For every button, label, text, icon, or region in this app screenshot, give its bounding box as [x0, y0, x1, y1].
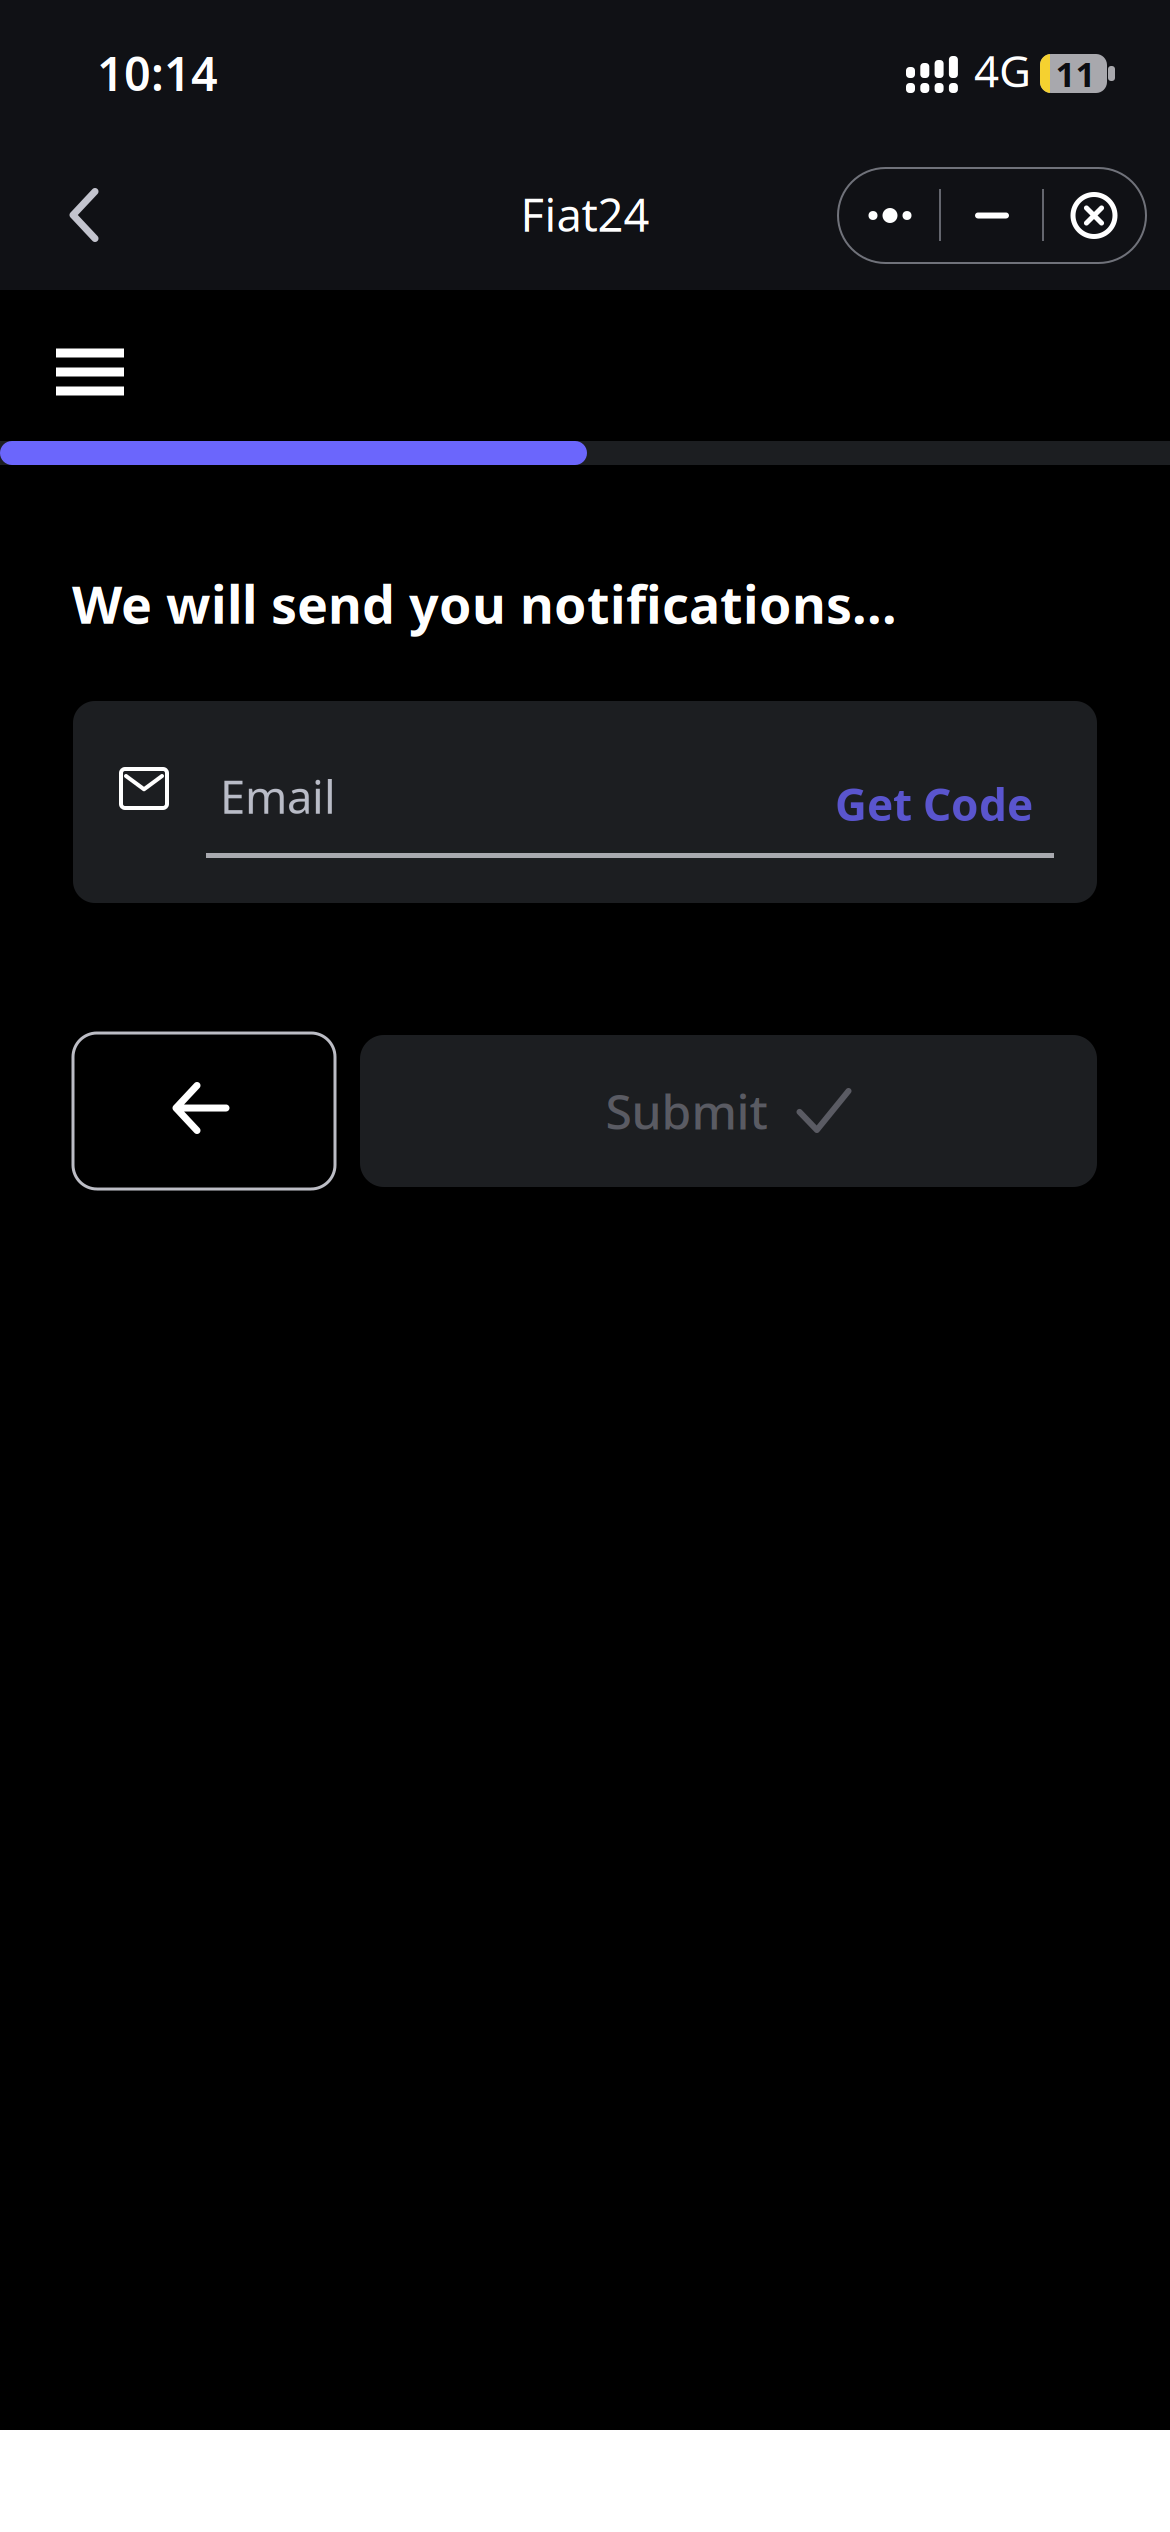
staticText: Submit: [605, 1079, 767, 1143]
staticText: 11: [1055, 50, 1095, 96]
button[interactable]: More: [840, 168, 940, 263]
staticText: 4G: [974, 41, 1031, 99]
staticText: Get Code: [835, 775, 1033, 833]
button[interactable]: Get Code: [793, 769, 1033, 839]
staticText: 10:14: [97, 42, 218, 104]
staticText: Email: [220, 766, 336, 826]
button[interactable]: Back: [29, 155, 139, 275]
button[interactable]: Menu: [34, 316, 146, 428]
staticText: We will send you notifications...: [72, 569, 897, 638]
button[interactable]: Email: [206, 750, 786, 862]
button[interactable]: Back: [73, 1033, 335, 1189]
button[interactable]: Minimize: [942, 168, 1042, 263]
button[interactable]: Submit: [360, 1035, 1097, 1187]
button[interactable]: Close: [1044, 168, 1144, 263]
staticText: Fiat24: [520, 184, 649, 244]
